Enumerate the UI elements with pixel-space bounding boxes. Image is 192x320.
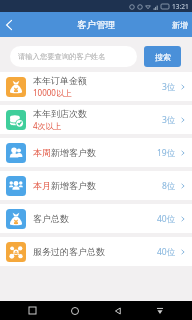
button[interactable]: 本月新增客户数 <box>0 171 192 200</box>
staticText: 本年到店次数 <box>33 108 87 119</box>
button[interactable]: Back <box>108 301 127 320</box>
button[interactable]: 客户总数 <box>0 204 192 233</box>
staticText: 19位 <box>157 147 176 159</box>
staticText: 13:21 <box>172 2 189 11</box>
staticText: 客户管理 <box>77 19 115 31</box>
staticText: 客户总数 <box>33 213 69 224</box>
button[interactable]: Home <box>65 301 84 320</box>
button[interactable]: 本年订单金额 <box>0 72 192 101</box>
button[interactable]: 本年到店次数 <box>0 105 192 134</box>
staticText: 新增 <box>172 20 188 30</box>
staticText: 40位 <box>157 246 176 258</box>
button[interactable]: 服务过的客户总数 <box>0 237 192 266</box>
staticText: 8位 <box>162 180 176 192</box>
staticText: 本年订单金额 <box>33 75 87 86</box>
staticText: 搜索 <box>155 52 171 62</box>
button[interactable]: 新增 <box>166 12 192 37</box>
staticText: 40位 <box>157 213 176 225</box>
staticText: 10000以上 <box>33 87 72 98</box>
staticText: 4次以上 <box>33 120 62 131</box>
button[interactable]: Hide keyboard <box>150 301 169 320</box>
button[interactable]: Recents <box>23 301 42 320</box>
staticText: 本周新增客户数 <box>33 147 96 158</box>
staticText: 服务过的客户总数 <box>33 246 105 257</box>
staticText: 请输入您要查询的客户姓名 <box>18 52 106 61</box>
button[interactable]: 请输入您要查询的客户姓名 <box>10 46 137 67</box>
button[interactable]: 本周新增客户数 <box>0 138 192 167</box>
staticText: 3位 <box>162 114 176 126</box>
button[interactable]: Back <box>0 12 18 37</box>
staticText: 本月新增客户数 <box>33 180 96 191</box>
button[interactable]: 搜索 <box>144 46 181 67</box>
staticText: 3位 <box>162 81 176 93</box>
